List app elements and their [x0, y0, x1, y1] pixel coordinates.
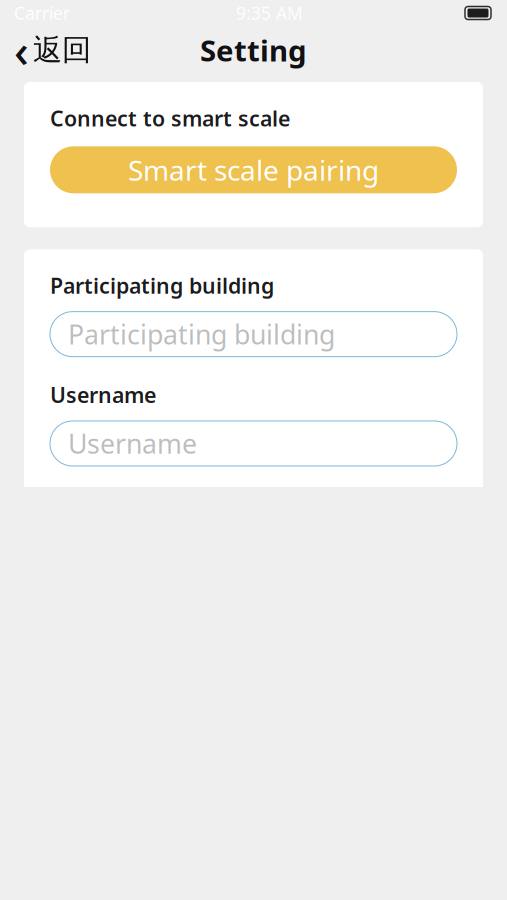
- button[interactable]: Username: [50, 421, 457, 466]
- staticText: 9:35 AM: [236, 1, 303, 24]
- staticText: Carrier: [14, 1, 70, 24]
- staticText: Smart scale pairing: [128, 151, 379, 188]
- staticText: 返回: [33, 32, 91, 68]
- button[interactable]: ‹: [0, 28, 105, 72]
- staticText: Connect to smart scale: [50, 104, 290, 132]
- staticText: Participating building: [50, 271, 274, 300]
- staticText: Participating building: [68, 316, 335, 352]
- staticText: Username: [68, 426, 197, 461]
- staticText: Username: [50, 381, 156, 409]
- staticText: Setting: [200, 30, 307, 69]
- button[interactable]: Smart scale pairing: [50, 146, 457, 193]
- button[interactable]: Participating building: [50, 312, 457, 357]
- staticText: ‹: [14, 20, 29, 80]
